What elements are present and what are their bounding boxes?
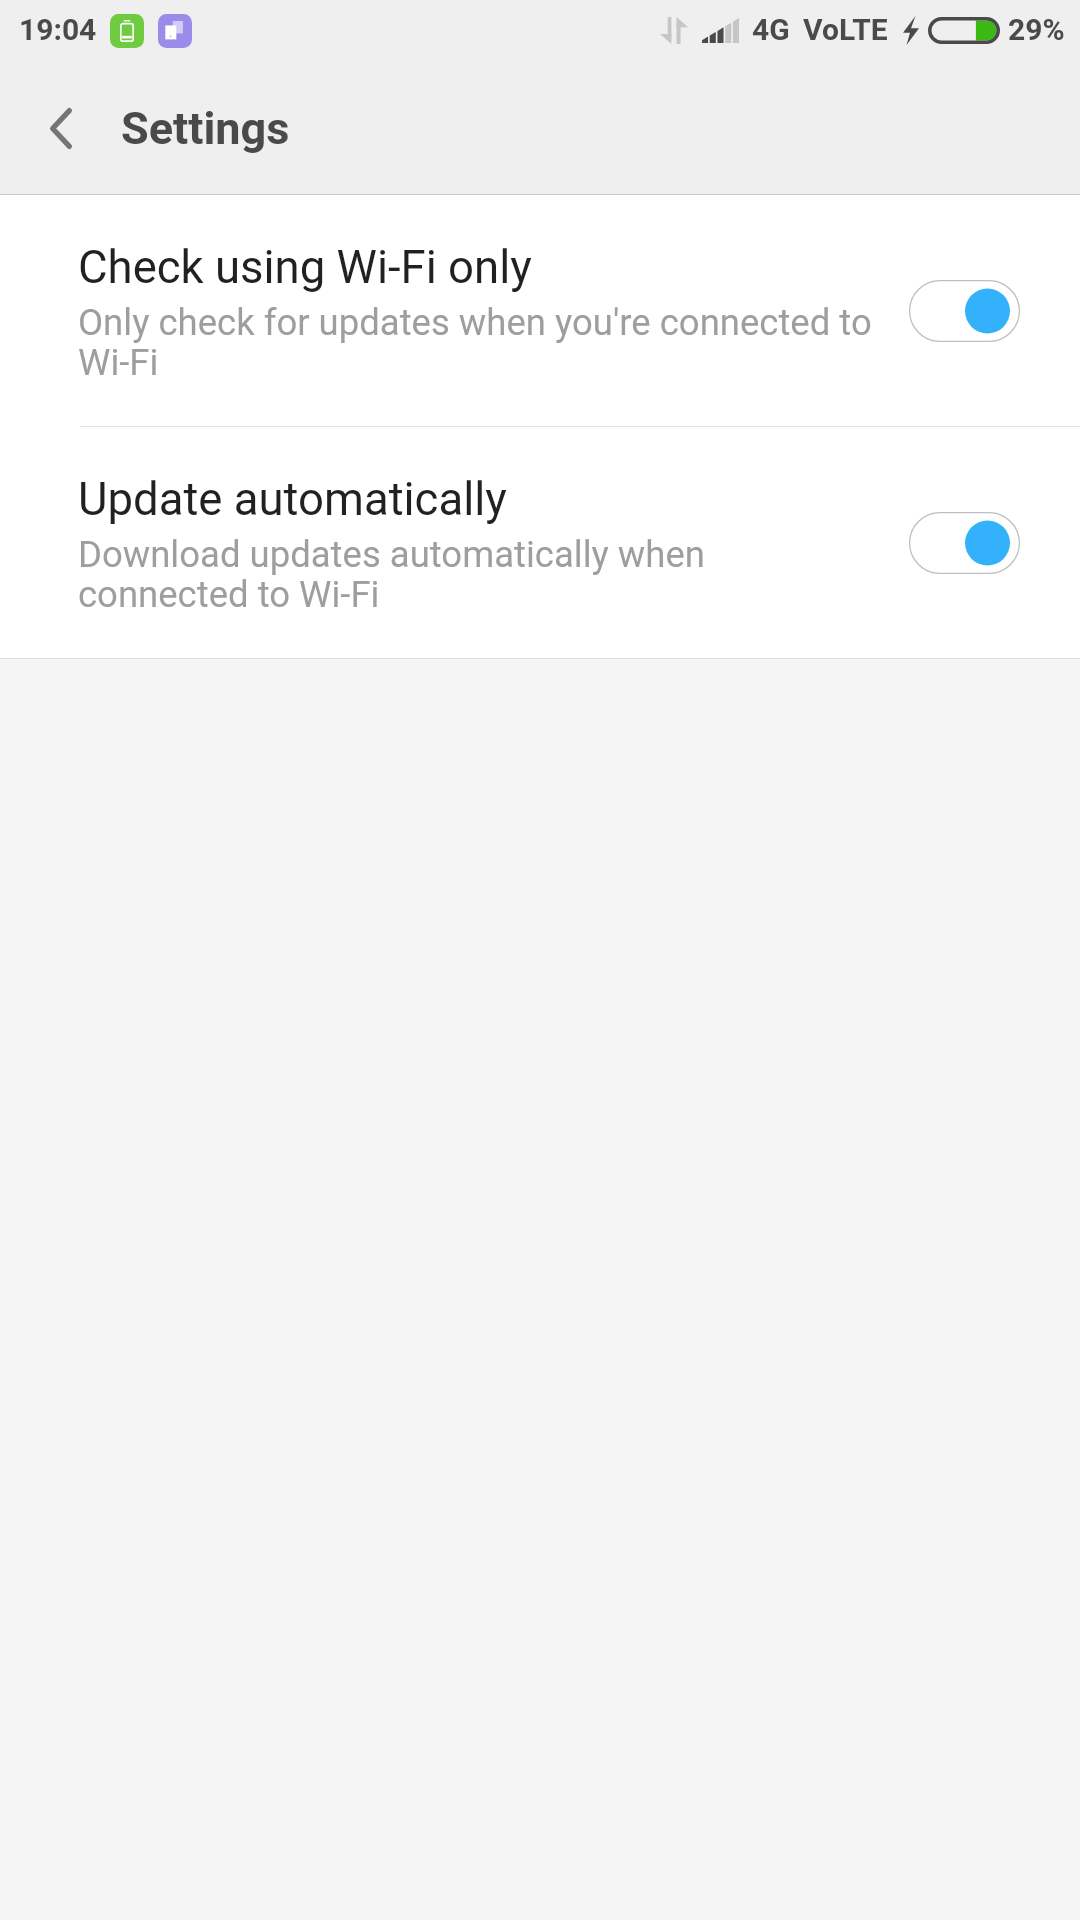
- staticText: VoLTE: [803, 12, 888, 47]
- button[interactable]: Toggle setting: [909, 280, 1020, 342]
- staticText: Check using Wi-Fi only: [78, 241, 532, 294]
- staticText: 4G: [752, 12, 790, 47]
- staticText: Settings: [121, 102, 290, 155]
- button[interactable]: Update automatically: [0, 427, 1080, 658]
- button[interactable]: Back: [17, 68, 105, 188]
- button[interactable]: Toggle setting: [909, 512, 1020, 574]
- staticText: Only check for updates when you're conne…: [78, 301, 874, 384]
- button[interactable]: Check using Wi-Fi only: [0, 195, 1080, 426]
- staticText: Update automatically: [78, 473, 507, 526]
- staticText: 29%: [1008, 12, 1065, 47]
- staticText: 19:04: [19, 12, 97, 47]
- staticText: Download updates automatically when conn…: [78, 533, 874, 616]
